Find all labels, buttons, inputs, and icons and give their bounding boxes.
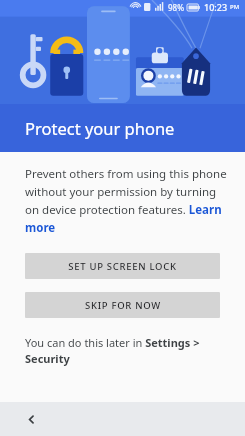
staticText: SKIP FOR NOW [85, 299, 161, 312]
staticText: 10:23 [204, 1, 228, 13]
staticText: SET UP SCREEN LOCK [68, 260, 177, 273]
staticText: You can do this later in Settings > Secu… [25, 335, 215, 367]
button[interactable]: SKIP FOR NOW [25, 292, 220, 318]
button[interactable]: SET UP SCREEN LOCK [25, 253, 220, 279]
staticText: 98% [168, 2, 184, 13]
staticText: Prevent others from using this phone wit… [25, 166, 231, 235]
staticText: Protect your phone [25, 117, 175, 139]
staticText: PM [230, 3, 240, 11]
button[interactable]: Back [19, 407, 43, 431]
